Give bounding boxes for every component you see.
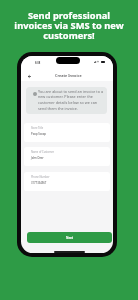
staticText: Phone Number	[31, 175, 50, 179]
button[interactable]: Next	[27, 232, 112, 243]
button[interactable]: Phone Number	[24, 172, 110, 191]
staticText: 8:08	[35, 61, 41, 65]
staticText: John Deer	[31, 156, 44, 160]
staticText: Poop Scoop	[31, 132, 47, 136]
staticText: Store Title	[31, 126, 44, 130]
button[interactable]: Name of Customer	[24, 147, 110, 166]
staticText: 3177334567	[31, 181, 47, 185]
button[interactable]: Store Title	[24, 123, 110, 142]
staticText: Create Invoice	[55, 73, 82, 78]
staticText: Send professional invoices via SMS to ne…	[0, 9, 138, 42]
button[interactable]: Back	[24, 71, 34, 81]
staticText: Next	[66, 236, 73, 240]
staticText: You are about to send an invoice to a ne…	[38, 89, 106, 112]
staticText: Name of Customer	[31, 150, 55, 154]
